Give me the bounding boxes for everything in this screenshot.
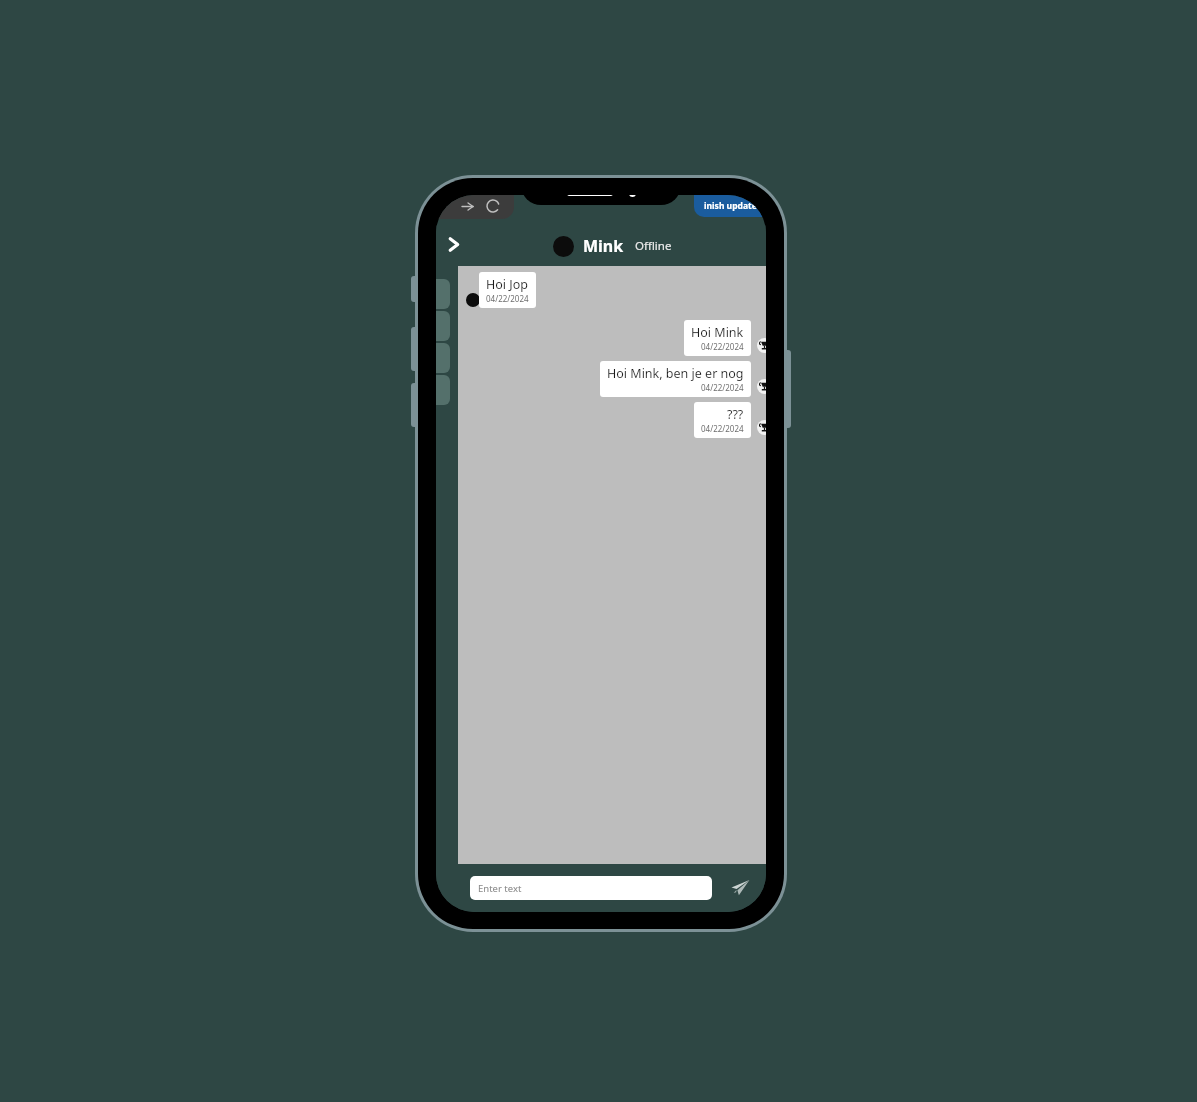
button[interactable]: Sidebar item	[436, 343, 450, 373]
button[interactable]: inish update	[694, 195, 766, 217]
button[interactable]: Sidebar item	[436, 311, 450, 341]
staticText: 04/22/2024	[701, 382, 744, 393]
staticText: ???	[727, 406, 744, 423]
button[interactable]: Browser controls	[436, 195, 514, 219]
other: Delivered	[757, 379, 766, 394]
button[interactable]: Send	[724, 873, 754, 903]
button[interactable]: Contact avatar	[553, 236, 574, 257]
button[interactable]: Sidebar item	[436, 279, 450, 309]
button[interactable]: Sidebar item	[436, 375, 450, 405]
staticText: Hoi Mink	[691, 324, 744, 341]
staticText: 04/22/2024	[701, 341, 744, 352]
staticText: 04/22/2024	[701, 423, 744, 434]
button[interactable]: ???	[694, 402, 751, 438]
button[interactable]: Hoi Mink, ben je er nog	[600, 361, 751, 397]
button[interactable]: Hoi Mink	[684, 320, 751, 356]
staticText: Mink	[583, 235, 624, 257]
staticText: Offline	[635, 238, 672, 254]
other: Delivered	[757, 420, 766, 435]
button[interactable]: Enter text	[470, 876, 712, 900]
button[interactable]: Back	[439, 230, 467, 258]
staticText: 04/22/2024	[486, 293, 529, 304]
button[interactable]: Hoi Jop	[479, 272, 536, 308]
staticText: inish update	[704, 200, 757, 212]
staticText: Enter text	[478, 882, 522, 895]
other: Delivered	[757, 338, 766, 353]
staticText: Hoi Mink, ben je er nog	[607, 365, 744, 382]
staticText: Hoi Jop	[486, 276, 528, 293]
